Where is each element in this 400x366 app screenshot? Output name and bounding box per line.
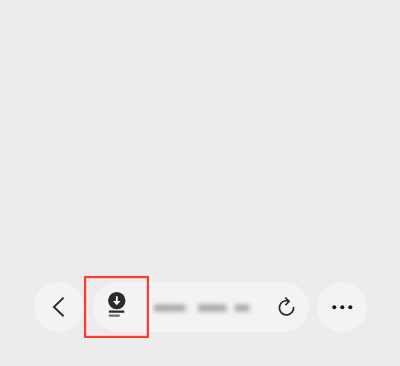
button[interactable]: Download page: [99, 285, 135, 329]
button[interactable]: More options: [317, 282, 367, 332]
button[interactable]: Reload: [271, 292, 302, 323]
staticText: 234.a: [199, 300, 229, 316]
button[interactable]: Back: [34, 282, 84, 332]
button[interactable]: Download page: [93, 282, 309, 332]
staticText: secure: [153, 300, 190, 316]
staticText: net: [234, 300, 253, 316]
